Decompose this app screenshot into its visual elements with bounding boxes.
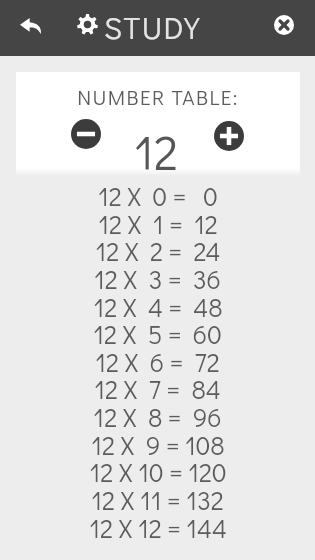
staticText: 12 X 9 = 108 [91, 428, 225, 456]
staticText: 12 X 11 = 132 [91, 483, 224, 511]
staticText: 12 X 7 = 84 [94, 372, 221, 400]
staticText: 12 X 1 = 12 [98, 207, 218, 235]
staticText: 12 X 12 = 144 [89, 511, 227, 539]
button[interactable]: 12 X 5 = 60 [0, 317, 315, 345]
staticText: 12 X 8 = 96 [93, 400, 222, 428]
staticText: 12 X 2 = 24 [95, 234, 221, 262]
button[interactable]: 12 X 11 = 132 [0, 483, 315, 511]
staticText: STUDY [104, 7, 201, 48]
button[interactable]: Back [9, 4, 52, 47]
button[interactable]: 12 X 1 = 12 [0, 207, 315, 235]
button[interactable]: 12 X 6 = 72 [0, 345, 315, 373]
button[interactable]: Increase number [212, 119, 246, 153]
button[interactable]: 12 X 8 = 96 [0, 400, 315, 428]
button[interactable]: 12 X 7 = 84 [0, 372, 315, 400]
button[interactable]: 12 X 9 = 108 [0, 428, 315, 456]
button[interactable]: 12 X 4 = 48 [0, 290, 315, 318]
button[interactable]: Decrease number [69, 117, 103, 151]
button[interactable]: 12 X 3 = 36 [0, 262, 315, 290]
staticText: 12 X 4 = 48 [93, 290, 223, 318]
button[interactable]: Close [264, 5, 304, 45]
button[interactable]: Settings [68, 5, 107, 44]
staticText: 12 X 6 = 72 [95, 345, 220, 373]
staticText: 12 [134, 119, 178, 182]
staticText: 12 X 5 = 60 [93, 317, 222, 345]
staticText: NUMBER TABLE: [77, 83, 239, 111]
button[interactable]: 12 X 12 = 144 [0, 511, 315, 539]
staticText: 12 X 3 = 36 [94, 262, 221, 290]
staticText: 12 X 10 = 120 [89, 455, 227, 483]
button[interactable]: 12 X 10 = 120 [0, 455, 315, 483]
button[interactable]: 12 X 2 = 24 [0, 234, 315, 262]
staticText: 12 X 0 = 0 [98, 179, 218, 207]
button[interactable]: 12 X 0 = 0 [0, 179, 315, 207]
